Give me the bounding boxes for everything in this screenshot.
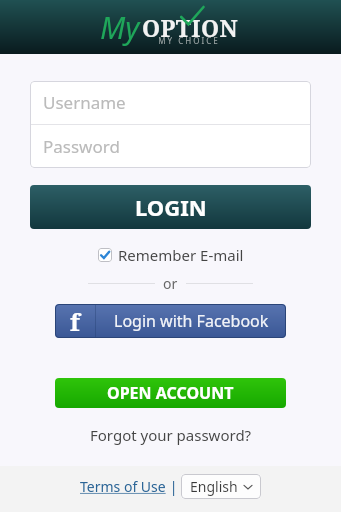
staticText: OPTION	[142, 12, 239, 43]
staticText: or	[163, 274, 178, 293]
button[interactable]: Password	[30, 125, 311, 168]
button[interactable]: Terms of Use	[80, 477, 166, 496]
button[interactable]: English	[181, 474, 261, 499]
staticText: Username	[43, 91, 126, 114]
button[interactable]: f	[55, 304, 286, 338]
staticText: Remember E-mail	[118, 245, 244, 265]
staticText: My	[100, 7, 140, 48]
staticText: Login with Facebook	[114, 310, 269, 332]
staticText: Terms of Use	[80, 477, 166, 496]
button[interactable]: LOGIN	[30, 185, 311, 229]
staticText: f	[70, 305, 80, 338]
staticText: MY CHOICE	[158, 35, 220, 46]
button[interactable]: Username	[30, 81, 311, 124]
staticText: English	[190, 477, 238, 496]
staticText: |	[166, 477, 181, 496]
staticText: OPEN ACCOUNT	[107, 382, 234, 404]
staticText: Forgot your password?	[90, 425, 252, 445]
button[interactable]: Remember E-mail	[92, 243, 250, 267]
staticText: LOGIN	[135, 192, 207, 222]
button[interactable]: Forgot your password?	[86, 421, 256, 449]
staticText: Password	[43, 135, 120, 158]
button[interactable]: OPEN ACCOUNT	[55, 378, 286, 408]
